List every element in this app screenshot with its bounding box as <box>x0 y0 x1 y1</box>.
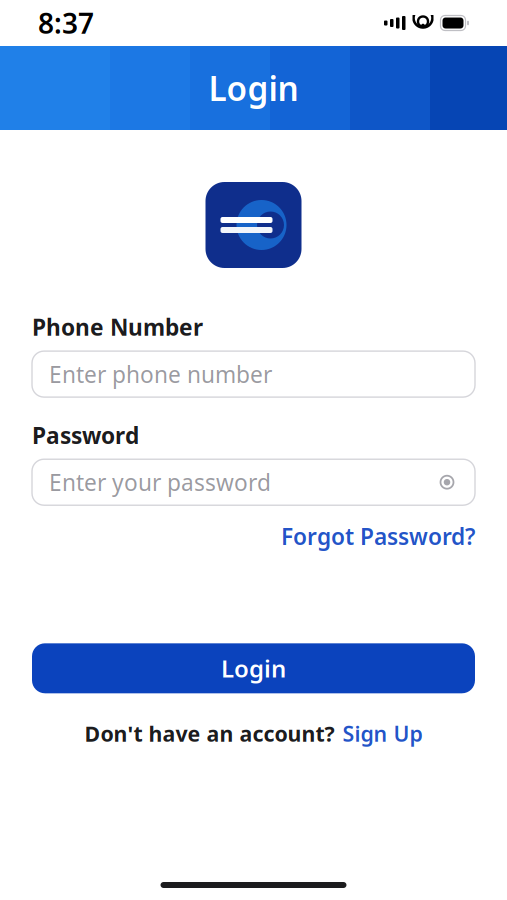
button[interactable]: Enter your password <box>32 459 475 505</box>
staticText: Login <box>221 652 286 684</box>
staticText: Sign Up <box>342 719 422 748</box>
staticText: Enter phone number <box>49 359 272 389</box>
staticText: Phone Number <box>32 312 203 342</box>
staticText: Enter your password <box>49 467 271 497</box>
button[interactable]: Enter phone number <box>32 351 475 397</box>
button[interactable]: Login <box>32 643 475 693</box>
button[interactable]: Sign Up <box>342 719 422 748</box>
staticText: Login <box>208 66 298 110</box>
button[interactable]: Forgot Password? <box>281 517 475 555</box>
staticText: Forgot Password? <box>281 521 475 551</box>
staticText: 8:37 <box>38 4 94 42</box>
staticText: Don't have an account? <box>84 719 334 748</box>
staticText: Password <box>32 420 139 450</box>
